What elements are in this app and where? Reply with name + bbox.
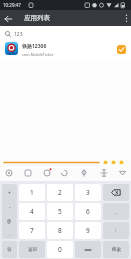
button[interactable]: 2 [47,184,73,201]
staticText: 应用列表 [24,14,50,22]
staticText: : [115,227,117,234]
button[interactable]: 6 [75,203,101,220]
staticText: 搜索 [112,247,121,253]
button[interactable]: 符 [2,241,17,258]
staticText: 9 [86,226,90,235]
staticText: 7 [30,226,34,235]
staticText: - [9,204,11,211]
staticText: 10:29:47 [3,2,21,8]
staticText: 1 [30,188,34,197]
button[interactable]: 9 [75,222,101,239]
button[interactable]: 4 [19,203,45,220]
staticText: 0 [58,245,62,254]
button[interactable]: 8 [47,222,73,239]
staticText: . [9,231,11,238]
button[interactable] [2,12,14,24]
button[interactable]: 返回 [19,241,45,258]
staticText: + [8,190,11,197]
button[interactable]: : [103,222,129,239]
staticText: 6 [86,207,90,216]
staticText: 2 [58,188,62,197]
button[interactable]: 3 [75,184,101,201]
staticText: com.MobileTicket [22,52,54,57]
staticText: 123 [14,31,23,38]
button[interactable] [75,241,101,258]
staticText: 铁路12306 [22,43,47,50]
button[interactable] [117,45,126,54]
staticText: 3 [86,188,90,197]
button[interactable]: 1 [19,184,45,201]
button[interactable]: 123 [0,26,131,41]
button[interactable] [103,184,129,201]
staticText: 符 [7,247,12,253]
button[interactable]: 7 [19,222,45,239]
staticText: 返回 [28,247,37,253]
button[interactable]: 铁路12306 [0,41,131,58]
button[interactable]: 0 [47,241,73,258]
button[interactable] [120,12,130,24]
button[interactable]: 5 [47,203,73,220]
staticText: 4 [30,207,34,216]
button[interactable]: 搜索 [103,241,129,258]
staticText: . [115,208,117,216]
staticText: 5 [58,207,62,216]
staticText: 8 [58,226,62,235]
button[interactable]: + [2,184,17,239]
staticText: @ [7,218,12,224]
